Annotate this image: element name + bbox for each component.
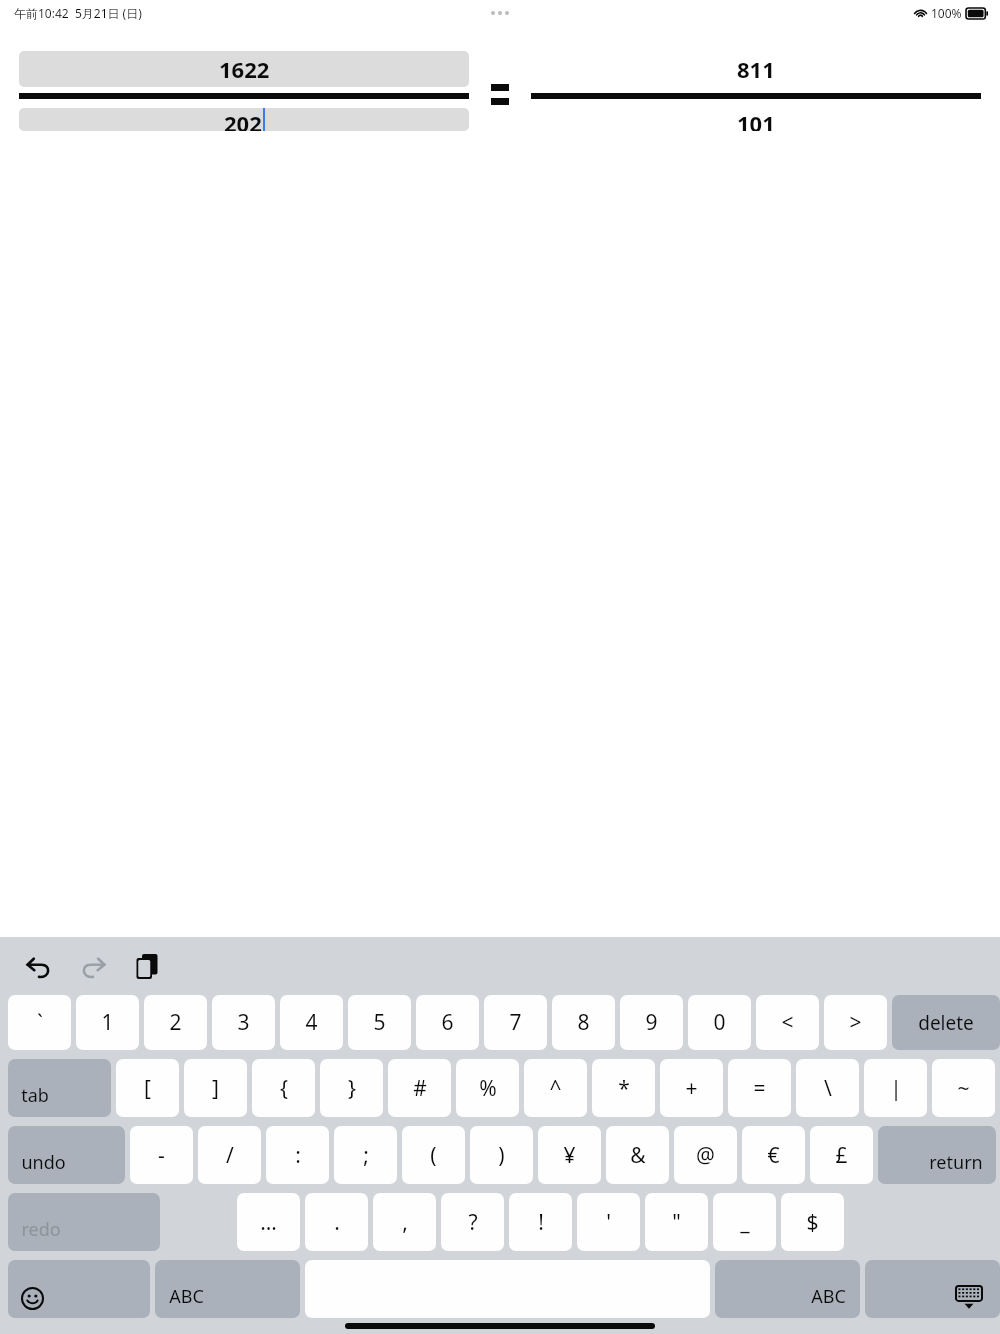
button[interactable]: ! xyxy=(509,1193,572,1251)
button[interactable]: _ xyxy=(713,1193,776,1251)
button[interactable]: } xyxy=(320,1059,383,1117)
button[interactable]: " xyxy=(645,1193,708,1251)
staticText: ? xyxy=(468,1208,478,1237)
staticText: < xyxy=(781,1008,794,1037)
staticText: ' xyxy=(606,1208,611,1237)
button[interactable]: [ xyxy=(116,1059,179,1117)
button[interactable]: Undo xyxy=(22,949,56,983)
staticText: # xyxy=(413,1074,427,1103)
button[interactable]: @ xyxy=(674,1126,737,1184)
button[interactable]: 0 xyxy=(688,995,751,1050)
staticText: ¥ xyxy=(563,1141,576,1170)
staticText: 0 xyxy=(713,1008,726,1037)
button[interactable]: > xyxy=(824,995,887,1050)
button[interactable]: 2 xyxy=(144,995,207,1050)
button[interactable]: 202 xyxy=(19,108,469,131)
staticText: 1622 xyxy=(219,54,270,84)
staticText: & xyxy=(630,1141,646,1170)
button[interactable]: ) xyxy=(470,1126,533,1184)
staticText: £ xyxy=(835,1141,848,1170)
button[interactable]: \ xyxy=(796,1059,859,1117)
button[interactable]: | xyxy=(864,1059,927,1117)
button[interactable]: 5 xyxy=(348,995,411,1050)
button[interactable]: / xyxy=(198,1126,261,1184)
button[interactable]: Emoji xyxy=(8,1260,150,1318)
button[interactable]: ABC xyxy=(715,1260,860,1318)
button[interactable]: % xyxy=(456,1059,519,1117)
button[interactable]: 8 xyxy=(552,995,615,1050)
button[interactable]: ' xyxy=(577,1193,640,1251)
staticText: % xyxy=(479,1074,497,1103)
button[interactable]: < xyxy=(756,995,819,1050)
staticText: * xyxy=(618,1074,630,1103)
button[interactable]: € xyxy=(742,1126,805,1184)
staticText: [ xyxy=(144,1074,151,1103)
button[interactable]: ? xyxy=(441,1193,504,1251)
button[interactable]: ABC xyxy=(155,1260,300,1318)
staticText: 100% xyxy=(931,5,962,21)
button[interactable]: , xyxy=(373,1193,436,1251)
button[interactable]: ~ xyxy=(932,1059,995,1117)
button[interactable]: - xyxy=(130,1126,193,1184)
button[interactable]: 1622 xyxy=(19,51,469,87)
button[interactable]: ; xyxy=(334,1126,397,1184)
staticText: @ xyxy=(696,1141,715,1170)
staticText: 9 xyxy=(645,1008,658,1037)
staticText: ] xyxy=(212,1074,219,1103)
button[interactable]: 1 xyxy=(76,995,139,1050)
staticText: … xyxy=(260,1208,277,1237)
button[interactable]: redo xyxy=(8,1193,160,1251)
staticText: € xyxy=(767,1141,780,1170)
button[interactable]: ] xyxy=(184,1059,247,1117)
button[interactable]: ^ xyxy=(524,1059,587,1117)
staticText: redo xyxy=(21,1217,61,1242)
button[interactable]: $ xyxy=(781,1193,844,1251)
button[interactable]: 6 xyxy=(416,995,479,1050)
staticText: 101 xyxy=(737,108,775,131)
button[interactable]: return xyxy=(878,1126,996,1184)
staticText: delete xyxy=(918,1010,974,1036)
button[interactable]: Redo xyxy=(76,949,110,983)
staticText: 2 xyxy=(169,1008,182,1037)
button[interactable]: 9 xyxy=(620,995,683,1050)
staticText: undo xyxy=(21,1150,66,1175)
button[interactable]: + xyxy=(660,1059,723,1117)
button[interactable]: 4 xyxy=(280,995,343,1050)
button[interactable]: tab xyxy=(8,1059,111,1117)
button[interactable]: undo xyxy=(8,1126,125,1184)
button[interactable]: Paste xyxy=(130,949,164,983)
button[interactable]: ` xyxy=(8,995,71,1050)
button[interactable]: 3 xyxy=(212,995,275,1050)
staticText: | xyxy=(890,1074,902,1103)
staticText: " xyxy=(672,1208,681,1237)
staticText: - xyxy=(158,1141,165,1170)
button[interactable]: Hide keyboard xyxy=(865,1260,1000,1318)
staticText: : xyxy=(295,1141,301,1170)
button[interactable]: . xyxy=(305,1193,368,1251)
staticText: ABC xyxy=(811,1284,846,1309)
staticText: ( xyxy=(430,1141,437,1170)
staticText: ~ xyxy=(957,1074,970,1103)
button[interactable]: * xyxy=(592,1059,655,1117)
button[interactable]: # xyxy=(388,1059,451,1117)
staticText: 202 xyxy=(224,108,262,131)
button[interactable]: ¥ xyxy=(538,1126,601,1184)
staticText: ` xyxy=(37,1008,43,1037)
staticText: ; xyxy=(363,1141,369,1170)
button[interactable]: £ xyxy=(810,1126,873,1184)
staticText: } xyxy=(348,1074,356,1103)
button[interactable]: & xyxy=(606,1126,669,1184)
button[interactable]: : xyxy=(266,1126,329,1184)
staticText: > xyxy=(849,1008,862,1037)
staticText: ABC xyxy=(169,1284,204,1309)
button[interactable]: … xyxy=(237,1193,300,1251)
staticText: ^ xyxy=(549,1074,562,1103)
button[interactable]: delete xyxy=(892,995,1000,1050)
staticText: 3 xyxy=(237,1008,250,1037)
button[interactable]: { xyxy=(252,1059,315,1117)
button[interactable]: ( xyxy=(402,1126,465,1184)
staticText: ! xyxy=(538,1208,544,1237)
button[interactable]: 7 xyxy=(484,995,547,1050)
button[interactable]: = xyxy=(728,1059,791,1117)
